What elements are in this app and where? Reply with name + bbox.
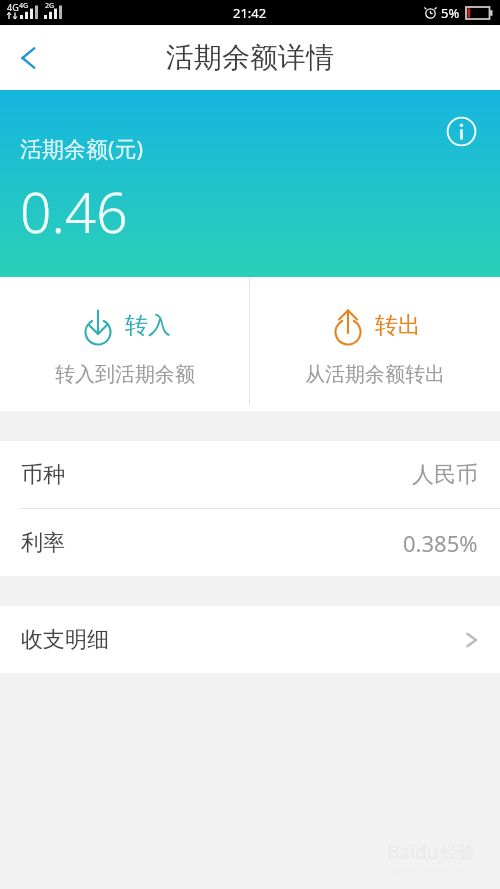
staticText: 人民币 (412, 461, 478, 489)
staticText: 利率 (21, 529, 65, 557)
staticText: 21:42 (233, 4, 267, 22)
staticText: 4G (7, 1, 19, 13)
button[interactable]: 转出 (250, 277, 500, 387)
staticText: 0.385% (403, 528, 478, 558)
staticText: 4G (19, 1, 29, 11)
staticText: 收支明细 (21, 626, 109, 654)
staticText: 经验 (441, 842, 475, 863)
staticText: 转出 (375, 311, 421, 340)
button[interactable]: 币种 (0, 441, 500, 508)
staticText: 转入 (125, 311, 171, 340)
staticText: 币种 (21, 461, 65, 489)
button[interactable]: 利率 (0, 509, 500, 576)
staticText: 转入到活期余额 (55, 362, 195, 387)
staticText: 0.46 (20, 174, 128, 249)
button[interactable]: Back (0, 29, 58, 87)
staticText: 2G (45, 1, 55, 11)
staticText: 5% (441, 4, 460, 22)
button[interactable]: 收支明细 (0, 606, 500, 673)
staticText: 从活期余额转出 (305, 362, 445, 387)
staticText: 活期余额详情 (166, 40, 334, 75)
button[interactable]: 转入 (0, 277, 249, 387)
button[interactable]: Info (444, 114, 478, 148)
staticText: 活期余额(元) (20, 133, 144, 163)
